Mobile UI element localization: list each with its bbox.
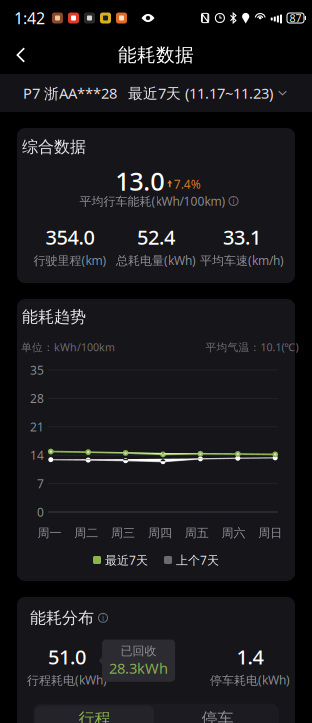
staticText: 总耗电量(kWh) xyxy=(116,252,196,268)
staticText: 上个7天 xyxy=(176,552,219,568)
staticText: P7 浙AA***28 xyxy=(23,83,117,103)
staticText: 0 xyxy=(37,504,44,520)
staticText: 周二 xyxy=(74,526,98,540)
staticText: 87 xyxy=(289,11,301,25)
staticText: 1.4 xyxy=(236,643,263,670)
staticText: 已回收 xyxy=(121,643,157,658)
staticText: 周一 xyxy=(37,526,61,540)
staticText: 7.4% xyxy=(174,176,201,192)
staticText: 最近7天 (11.17~11.23) xyxy=(128,83,273,103)
staticText: 平均气温：10.1(℃) xyxy=(205,340,298,354)
staticText: 能耗数据 xyxy=(118,43,194,66)
staticText: 周日 xyxy=(258,526,282,540)
button[interactable]: P7 浙AA***28 xyxy=(23,73,117,113)
staticText: 28 xyxy=(30,390,44,406)
staticText: 周三 xyxy=(111,526,135,540)
staticText: 13.0 xyxy=(115,164,164,198)
staticText: 能耗分布 xyxy=(30,608,94,628)
staticText: 35 xyxy=(30,362,44,378)
staticText: 51.0 xyxy=(48,643,86,670)
staticText: 1:42 xyxy=(14,7,45,29)
staticText: 354.0 xyxy=(45,224,94,250)
staticText: 7 xyxy=(37,476,44,491)
button[interactable]: 返回 xyxy=(0,36,38,74)
staticText: 28.3kWh xyxy=(109,658,168,678)
staticText: 周六 xyxy=(221,526,245,540)
staticText: 行程 xyxy=(78,709,110,723)
staticText: 周四 xyxy=(148,526,172,540)
staticText: 行程耗电(kWh) xyxy=(27,672,107,688)
staticText: 最近7天 xyxy=(105,552,148,568)
staticText: 停车耗电(kWh) xyxy=(210,672,290,688)
staticText: 52.4 xyxy=(137,224,175,250)
staticText: 行驶里程(km) xyxy=(33,252,106,268)
staticText: 33.1 xyxy=(223,224,261,250)
staticText: 周五 xyxy=(185,526,209,540)
staticText: 平均行车能耗(kWh/100km) xyxy=(79,193,225,209)
staticText: 21 xyxy=(30,419,44,435)
staticText: 停车 xyxy=(201,709,233,723)
staticText: i xyxy=(102,612,104,623)
staticText: 平均车速(km/h) xyxy=(200,252,284,268)
staticText: 14 xyxy=(30,447,44,463)
button[interactable]: 最近7天 (11.17~11.23) xyxy=(128,73,287,113)
staticText: 综合数据 xyxy=(22,137,86,157)
staticText: i xyxy=(232,196,234,206)
staticText: 能耗趋势 xyxy=(22,307,86,327)
button[interactable]: 停车 xyxy=(156,704,279,723)
button[interactable]: 行程 xyxy=(33,704,156,723)
staticText: 单位：kWh/100km xyxy=(21,340,115,354)
